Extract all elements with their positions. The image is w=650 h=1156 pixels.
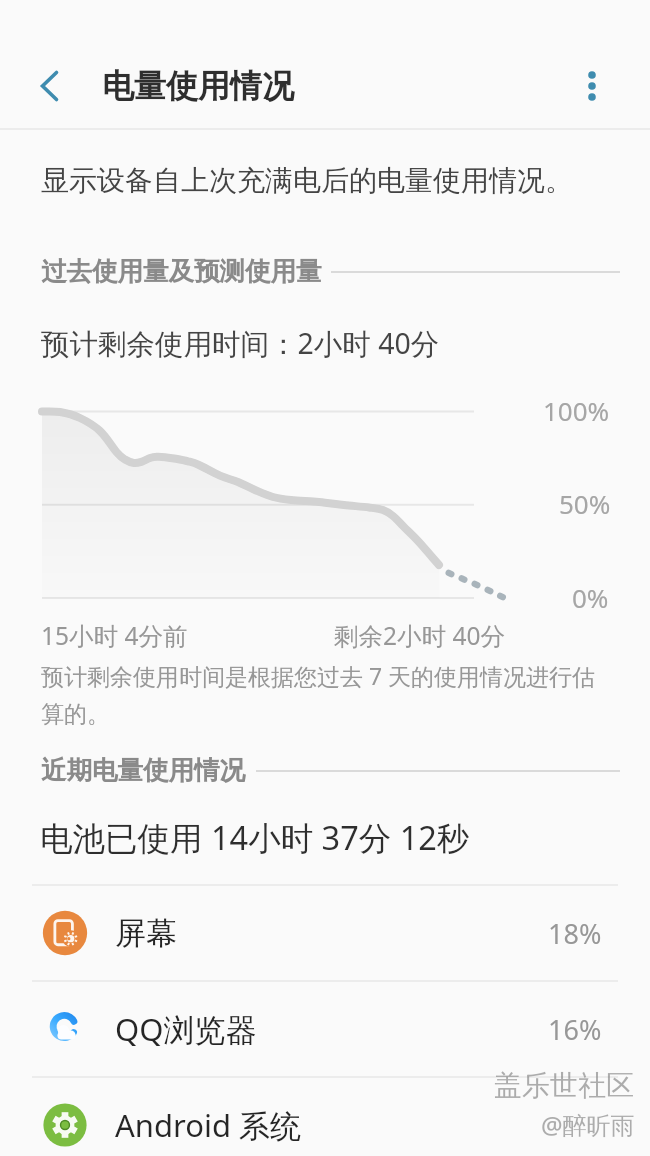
- staticText: 预计剩余使用时间：2小时 40分: [41, 324, 440, 363]
- staticText: 电池已使用 14小时 37分 12秒: [40, 815, 470, 859]
- staticText: @醉昕雨: [541, 1108, 635, 1141]
- button[interactable]: 屏幕: [0, 886, 650, 980]
- staticText: 预计剩余使用时间是根据您过去 7 天的使用情况进行估算的。: [41, 660, 597, 728]
- staticText: 100%: [543, 393, 610, 428]
- staticText: 50%: [559, 486, 611, 521]
- button[interactable]: Back: [17, 54, 81, 118]
- button[interactable]: QQ浏览器: [0, 982, 650, 1076]
- staticText: 0%: [572, 580, 609, 615]
- staticText: 18%: [548, 915, 602, 952]
- staticText: 显示设备自上次充满电后的电量使用情况。: [41, 163, 573, 198]
- staticText: 剩余2小时 40分: [334, 619, 505, 652]
- staticText: 15小时 4分前: [41, 619, 188, 652]
- staticText: 近期电量使用情况: [41, 754, 245, 786]
- staticText: 16%: [548, 1011, 602, 1048]
- staticText: Android 系统: [115, 1104, 302, 1146]
- staticText: 盖乐世社区: [494, 1068, 634, 1103]
- button[interactable]: Android 系统: [0, 1078, 650, 1156]
- staticText: 过去使用量及预测使用量: [41, 255, 322, 287]
- staticText: 电量使用情况: [102, 66, 294, 106]
- staticText: 屏幕: [115, 914, 177, 953]
- button[interactable]: More options: [560, 54, 624, 118]
- staticText: QQ浏览器: [115, 1008, 257, 1050]
